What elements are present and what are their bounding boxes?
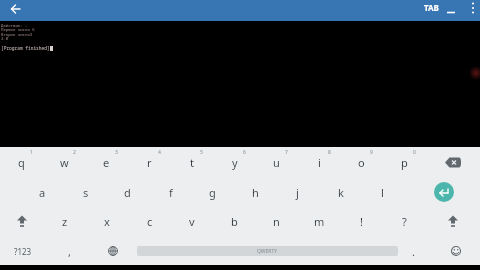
- button[interactable]: e: [85, 147, 128, 177]
- button[interactable]: v: [170, 206, 213, 236]
- staticText: QWERTY: [257, 248, 278, 255]
- staticText: [Program finished]: [1, 45, 50, 51]
- staticText: 4: [158, 149, 161, 156]
- staticText: r: [147, 155, 152, 170]
- staticText: x: [104, 214, 110, 229]
- button[interactable]: [421, 177, 466, 207]
- button[interactable]: !: [340, 206, 383, 236]
- staticText: n: [273, 214, 280, 229]
- button[interactable]: p: [383, 147, 426, 177]
- staticText: w: [60, 155, 69, 170]
- staticText: i: [318, 155, 321, 170]
- button[interactable]: w: [43, 147, 86, 177]
- staticText: TAB: [424, 2, 439, 13]
- button[interactable]: t: [170, 147, 213, 177]
- button[interactable]: [437, 236, 475, 266]
- button[interactable]: q: [0, 147, 43, 177]
- button[interactable]: [425, 147, 480, 177]
- button[interactable]: l: [361, 177, 404, 207]
- staticText: 7: [285, 149, 288, 156]
- staticText: h: [252, 185, 259, 200]
- button[interactable]: [444, 0, 460, 17]
- staticText: .: [412, 244, 415, 259]
- staticText: z: [62, 214, 68, 229]
- staticText: u: [273, 155, 280, 170]
- staticText: 8: [328, 149, 331, 156]
- staticText: j: [296, 185, 299, 200]
- button[interactable]: ?: [383, 206, 426, 236]
- button[interactable]: ,: [48, 236, 90, 266]
- staticText: 0: [413, 149, 416, 156]
- staticText: g: [209, 185, 216, 200]
- staticText: 2: [73, 149, 76, 156]
- button[interactable]: a: [21, 177, 64, 207]
- staticText: o: [358, 155, 365, 170]
- staticText: e: [103, 155, 110, 170]
- button[interactable]: o: [340, 147, 383, 177]
- staticText: f: [169, 185, 173, 200]
- button[interactable]: u: [255, 147, 298, 177]
- button[interactable]: [465, 0, 480, 16]
- staticText: k: [338, 185, 344, 200]
- staticText: 2.0: [1, 36, 9, 41]
- button[interactable]: j: [276, 177, 319, 207]
- button[interactable]: k: [319, 177, 362, 207]
- staticText: 5: [200, 149, 203, 156]
- button[interactable]: i: [298, 147, 341, 177]
- staticText: c: [147, 214, 153, 229]
- button[interactable]: r: [128, 147, 171, 177]
- staticText: q: [18, 155, 25, 170]
- staticText: 9: [370, 149, 373, 156]
- button[interactable]: [92, 236, 134, 266]
- button[interactable]: h: [234, 177, 277, 207]
- button[interactable]: ?123: [0, 236, 45, 266]
- staticText: m: [314, 214, 325, 229]
- staticText: 1: [30, 149, 33, 156]
- staticText: v: [189, 214, 195, 229]
- staticText: 6: [243, 149, 246, 156]
- button[interactable]: n: [255, 206, 298, 236]
- button[interactable]: b: [213, 206, 256, 236]
- staticText: Первое число 6: [1, 27, 35, 32]
- staticText: p: [401, 155, 408, 170]
- staticText: Действие: -: [1, 23, 28, 28]
- button[interactable]: [0, 206, 43, 236]
- button[interactable]: g: [191, 177, 234, 207]
- staticText: 3: [115, 149, 118, 156]
- button[interactable]: f: [149, 177, 192, 207]
- button[interactable]: [6, 0, 26, 17]
- button[interactable]: .: [398, 236, 428, 266]
- staticText: ?: [402, 214, 407, 229]
- button[interactable]: d: [106, 177, 149, 207]
- staticText: s: [83, 185, 89, 200]
- staticText: d: [124, 185, 131, 200]
- button[interactable]: s: [64, 177, 107, 207]
- staticText: Второе число3: [1, 32, 33, 37]
- button[interactable]: QWERTY: [137, 246, 398, 256]
- button[interactable]: x: [85, 206, 128, 236]
- staticText: y: [232, 155, 238, 170]
- button[interactable]: z: [43, 206, 86, 236]
- button[interactable]: y: [213, 147, 256, 177]
- button[interactable]: TAB: [418, 0, 444, 15]
- staticText: t: [190, 155, 194, 170]
- staticText: a: [39, 185, 46, 200]
- staticText: ?123: [14, 246, 32, 257]
- button[interactable]: m: [298, 206, 341, 236]
- staticText: ,: [68, 244, 71, 259]
- staticText: b: [231, 214, 238, 229]
- button[interactable]: [425, 206, 480, 236]
- staticText: !: [360, 214, 363, 229]
- button[interactable]: c: [128, 206, 171, 236]
- staticText: l: [381, 185, 384, 200]
